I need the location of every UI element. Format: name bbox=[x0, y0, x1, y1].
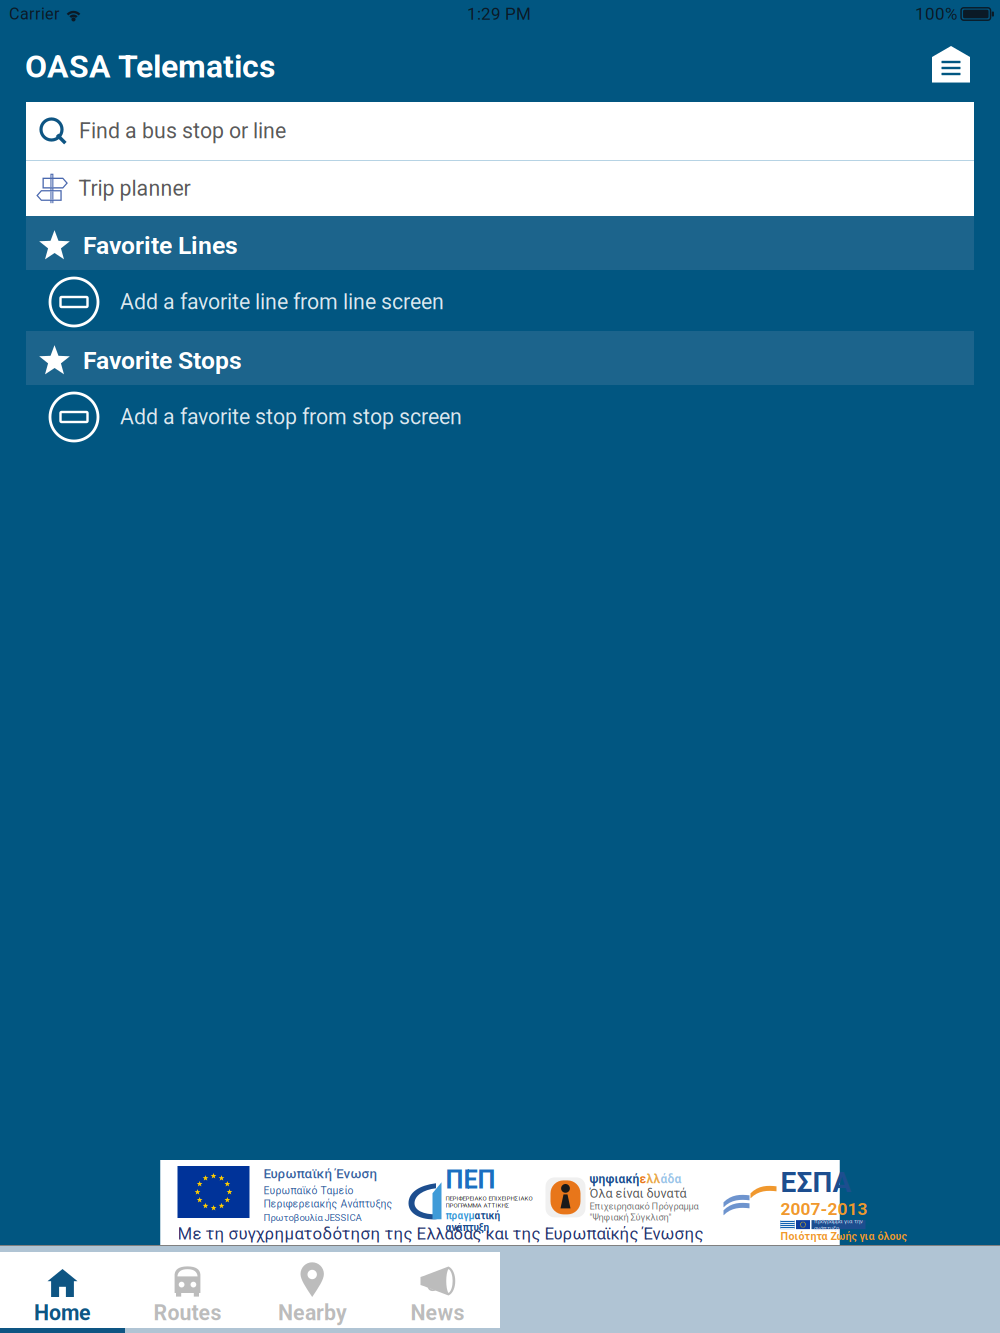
staticText: "Ψηφιακή Σύγκλιση" bbox=[589, 1212, 671, 1223]
button[interactable]: Add a favorite stop from stop screen bbox=[26, 385, 974, 446]
staticText: Add a favorite stop from stop screen bbox=[120, 404, 462, 429]
staticText: Επιχειρησιακό Πρόγραμμα bbox=[589, 1201, 698, 1212]
staticText: Add a favorite line from line screen bbox=[120, 289, 444, 314]
staticText: Home bbox=[34, 1300, 91, 1325]
staticText: ΕΣΠΑ bbox=[780, 1166, 851, 1199]
staticText: πρόγραμμα για την ανάπτυξη bbox=[814, 1217, 863, 1232]
staticText: Ποιότητα Ζωής για όλους bbox=[780, 1230, 906, 1243]
staticText: λλ bbox=[646, 1172, 660, 1186]
button[interactable]: News bbox=[375, 1252, 500, 1328]
staticText: ανάπτυξη bbox=[445, 1222, 489, 1233]
staticText: πραγμ bbox=[445, 1210, 474, 1222]
staticText: ΠΕΠ bbox=[445, 1165, 495, 1195]
button[interactable]: Trip planner bbox=[26, 161, 974, 216]
staticText: News bbox=[410, 1300, 464, 1325]
staticText: Ευρωπαϊκή Ένωση bbox=[263, 1166, 377, 1182]
button[interactable]: Add a favorite line from line screen bbox=[26, 270, 974, 331]
staticText: Όλα είναι δυνατά bbox=[589, 1186, 686, 1201]
staticText: Με τη συγχρηματοδότηση της Ελλάδας και τ… bbox=[177, 1224, 703, 1244]
staticText: άδα bbox=[660, 1172, 681, 1186]
staticText: ε bbox=[639, 1172, 646, 1186]
staticText: 2007-2013 bbox=[780, 1199, 867, 1219]
staticText: Routes bbox=[153, 1300, 221, 1325]
staticText: Find a bus stop or line bbox=[79, 118, 286, 143]
staticText: Nearby bbox=[278, 1300, 347, 1325]
staticText: Favorite Stops bbox=[83, 346, 242, 375]
staticText: ΠΕΡΙΦΕΡΕΙΑΚΟ ΕΠΙΧΕΙΡΗΣΙΑΚΟ bbox=[445, 1195, 532, 1202]
staticText: OASA Telematics bbox=[25, 48, 275, 85]
staticText: ΠΡΟΓΡΑΜΜΑ ΑΤΤΙΚΗΣ bbox=[445, 1202, 509, 1209]
button[interactable]: Home bbox=[0, 1252, 125, 1328]
staticText: Πρωτοβουλία JESSICA bbox=[263, 1212, 361, 1223]
button[interactable]: Nearby bbox=[250, 1252, 375, 1328]
staticText: Favorite Lines bbox=[83, 231, 238, 260]
staticText: Carrier bbox=[9, 4, 60, 24]
button[interactable]: Routes bbox=[125, 1252, 250, 1328]
staticText: 1:29 PM bbox=[467, 4, 531, 24]
button[interactable]: Find a bus stop or line bbox=[26, 102, 974, 160]
button[interactable]: Menu bbox=[921, 35, 1000, 93]
staticText: 100% bbox=[915, 4, 958, 24]
staticText: Ευρωπαϊκό Ταμείο bbox=[263, 1185, 353, 1197]
staticText: Trip planner bbox=[78, 176, 190, 201]
staticText: ατική bbox=[474, 1210, 500, 1222]
staticText: Περιφερειακής Ανάπτυξης bbox=[263, 1198, 392, 1210]
staticText: ψηφιακή bbox=[589, 1172, 639, 1186]
